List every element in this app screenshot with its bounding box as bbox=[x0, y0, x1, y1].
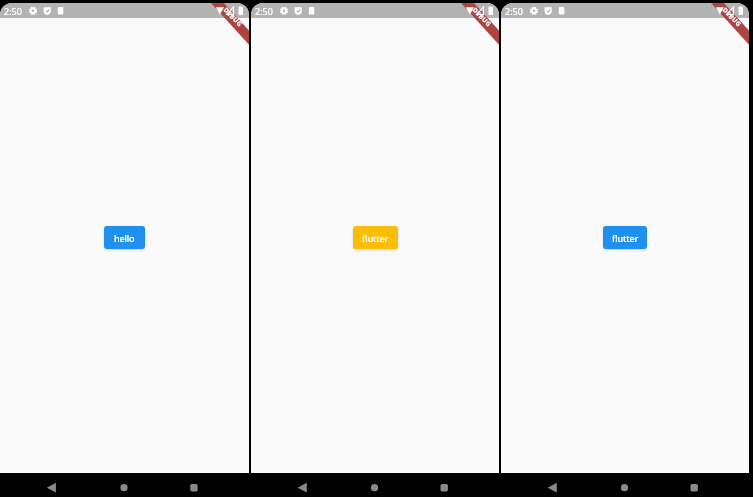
staticText: DEBUG bbox=[222, 5, 245, 28]
staticText: flutter bbox=[612, 232, 639, 244]
button[interactable] bbox=[666, 473, 749, 497]
button[interactable] bbox=[583, 473, 666, 497]
staticText: DEBUG bbox=[721, 5, 744, 28]
button[interactable] bbox=[0, 473, 83, 497]
button[interactable] bbox=[501, 473, 583, 497]
button[interactable]: hello bbox=[104, 226, 145, 249]
staticText: DEBUG bbox=[471, 5, 494, 28]
button[interactable] bbox=[251, 473, 333, 497]
staticText: flutter bbox=[362, 232, 389, 244]
staticText: 2:50 bbox=[505, 5, 523, 17]
staticText: 2:50 bbox=[4, 5, 22, 17]
button[interactable] bbox=[166, 473, 249, 497]
button[interactable]: flutter bbox=[603, 226, 647, 249]
button[interactable] bbox=[83, 473, 166, 497]
button[interactable]: flutter bbox=[353, 226, 398, 249]
button[interactable] bbox=[416, 473, 499, 497]
button[interactable] bbox=[333, 473, 416, 497]
staticText: hello bbox=[114, 232, 135, 244]
staticText: 2:50 bbox=[255, 5, 273, 17]
